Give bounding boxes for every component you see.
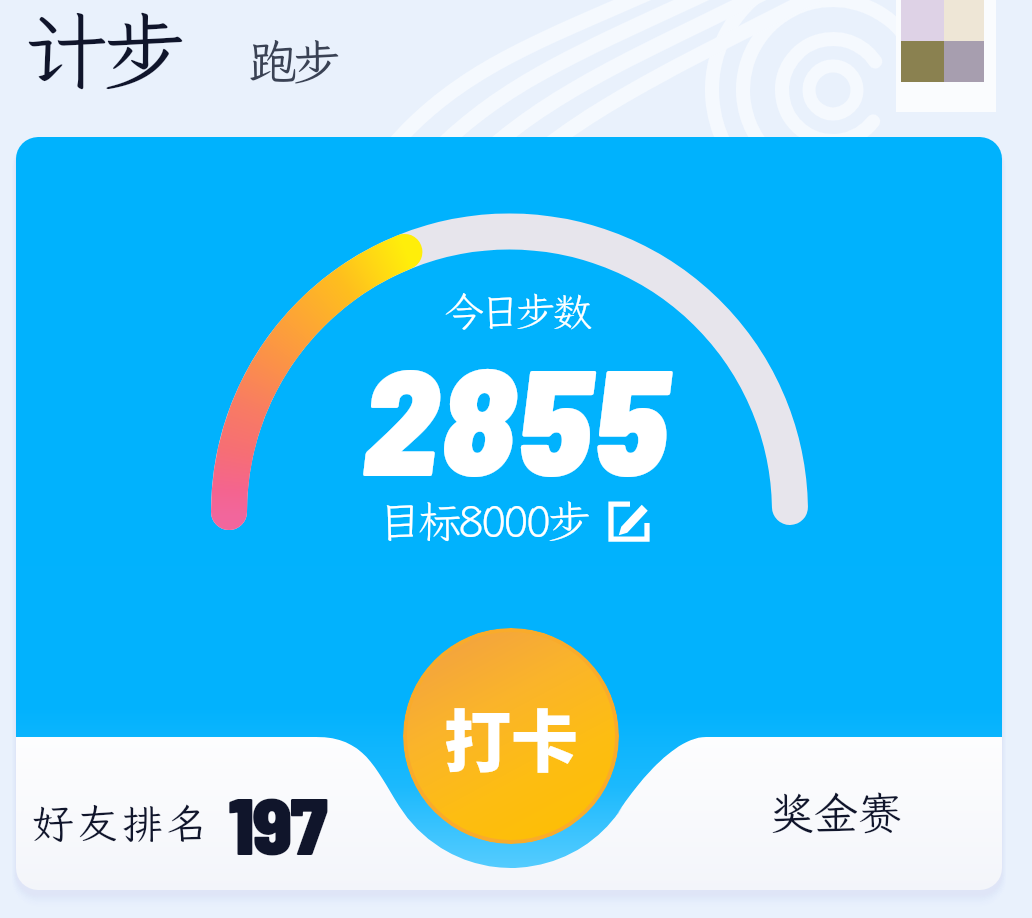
button[interactable]: Edit goal [604, 496, 654, 546]
staticText: 197 [228, 775, 326, 871]
staticText: 今日步数 [444, 285, 588, 338]
staticText: 奖金赛 [770, 784, 902, 842]
staticText: 跑步 [249, 29, 338, 92]
button[interactable]: Profile [896, 0, 996, 112]
button[interactable]: 奖金赛 [770, 778, 902, 848]
staticText: 好友排名 [32, 796, 212, 850]
staticText: 2855 [362, 326, 671, 506]
button[interactable]: 好友排名 [32, 763, 372, 883]
button[interactable]: 目标8000步 [378, 492, 588, 550]
button[interactable]: 跑步 [239, 23, 348, 98]
staticText: 计步 [24, 0, 183, 105]
button[interactable]: 打卡 [403, 628, 619, 844]
staticText: 打卡 [444, 688, 578, 785]
button[interactable]: 计步 [14, 0, 193, 111]
staticText: 目标8000步 [378, 492, 588, 550]
